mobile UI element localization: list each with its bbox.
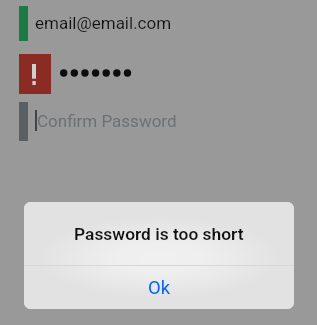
staticText: email@email.com (35, 13, 172, 33)
staticText: Ok (148, 277, 171, 299)
staticText: Password is too short (74, 224, 244, 244)
other: Password error (19, 54, 51, 94)
button[interactable]: email@email.com (0, 0, 317, 48)
button[interactable]: Confirm Password (0, 98, 317, 146)
button[interactable]: Password error (0, 50, 317, 98)
staticText: Confirm Password (37, 111, 177, 131)
button[interactable]: Ok (24, 266, 294, 309)
